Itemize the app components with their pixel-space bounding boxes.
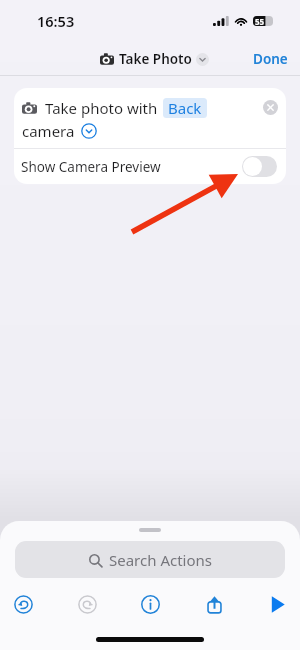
staticText: Take Photo: [119, 50, 192, 68]
button[interactable]: Back: [163, 98, 207, 118]
button[interactable]: Share: [197, 587, 231, 621]
button[interactable]: Redo: [70, 587, 104, 621]
staticText: Show Camera Preview: [21, 158, 161, 176]
button[interactable]: Show Camera Preview: [14, 149, 286, 184]
staticText: 55: [255, 16, 265, 26]
staticText: Take photo with: [45, 98, 158, 118]
button[interactable]: Undo: [6, 587, 40, 621]
button[interactable]: Search Actions: [15, 541, 285, 578]
staticText: Search Actions: [109, 550, 212, 570]
button[interactable]: Run: [260, 587, 294, 621]
button[interactable]: Take Photo: [100, 50, 209, 68]
staticText: Done: [253, 50, 288, 68]
staticText: camera: [22, 121, 75, 141]
button[interactable]: Info: [133, 587, 167, 621]
button[interactable]: Done: [245, 44, 300, 74]
staticText: 16:53: [37, 11, 75, 31]
staticText: Back: [168, 98, 202, 118]
button[interactable]: Remove action: [263, 100, 278, 115]
button[interactable]: Expand camera options: [81, 123, 97, 139]
